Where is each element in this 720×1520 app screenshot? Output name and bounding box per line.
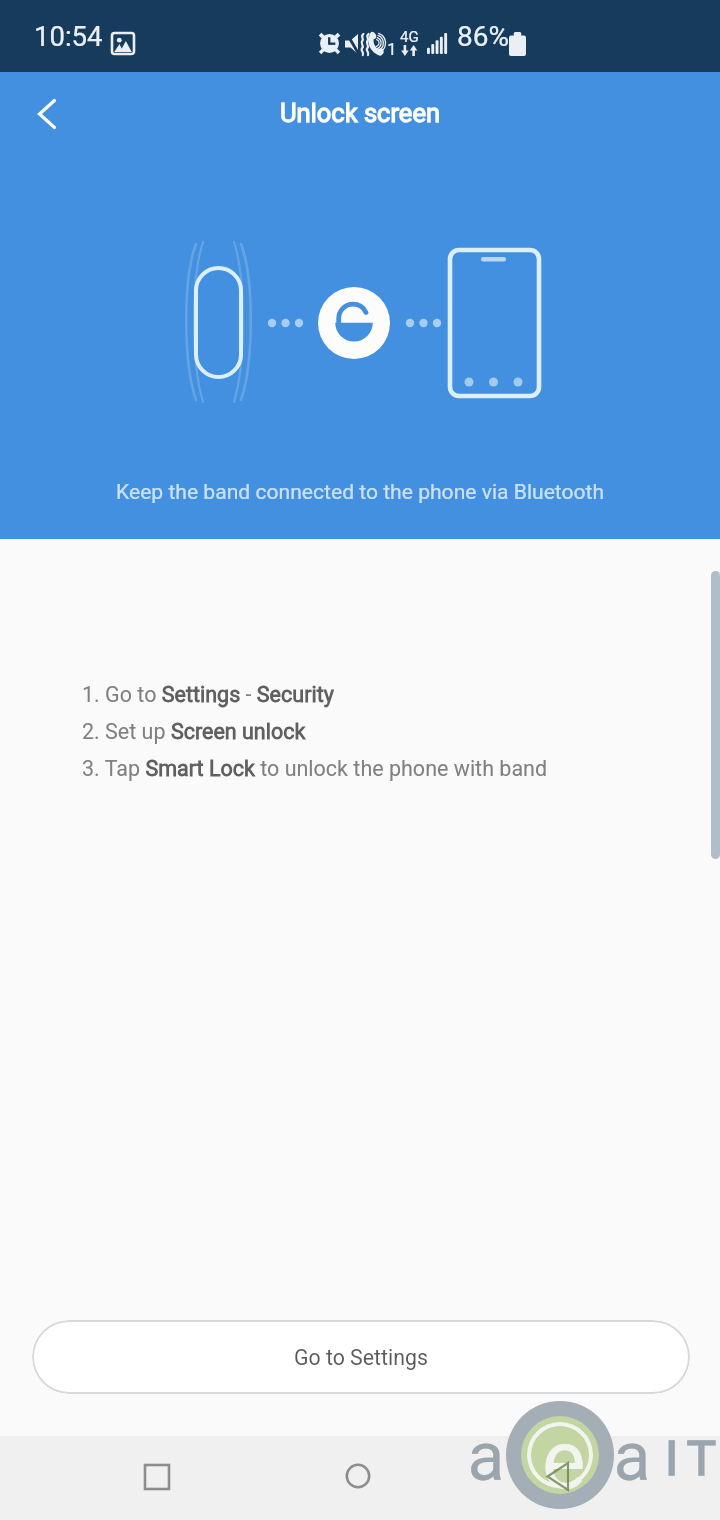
staticText: 4G — [400, 28, 419, 46]
staticText: 86% — [457, 20, 509, 53]
staticText: IT — [665, 1430, 720, 1487]
staticText: 10:54 — [34, 20, 103, 52]
staticText: 3. Tap Smart Lock to unlock the phone wi… — [82, 756, 548, 781]
staticText: Go to Settings — [294, 1345, 428, 1370]
button[interactable]: Recents — [117, 1436, 197, 1520]
staticText: 2. Set up Screen unlock — [82, 719, 306, 744]
staticText: 1. Go to Settings - Security — [82, 682, 334, 707]
button[interactable]: Back — [5, 72, 89, 156]
staticText: arena — [466, 1417, 652, 1497]
button[interactable]: Home — [318, 1436, 398, 1520]
staticText: e — [542, 1412, 586, 1508]
staticText: Keep the band connected to the phone via… — [116, 479, 605, 504]
button[interactable]: Back — [519, 1436, 599, 1520]
staticText: 1 — [387, 39, 397, 59]
button[interactable]: Go to Settings — [32, 1320, 690, 1394]
staticText: Unlock screen — [280, 98, 440, 128]
